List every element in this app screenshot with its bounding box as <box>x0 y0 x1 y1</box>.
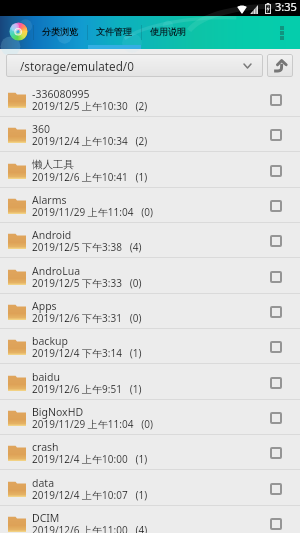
button[interactable]: DCIM <box>0 506 300 533</box>
button[interactable]: -336080995 <box>0 82 300 117</box>
staticText: 2019/12/6 上午10:41 (1) <box>32 170 148 184</box>
button[interactable]: data <box>0 471 300 506</box>
button[interactable]: Android <box>0 223 300 258</box>
button[interactable]: 使用说明 <box>141 16 195 49</box>
button[interactable]: Select crash <box>270 447 282 459</box>
staticText: 2019/12/6 下午3:31 (0) <box>32 311 142 325</box>
button[interactable]: Apps <box>0 294 300 329</box>
button[interactable]: Select 懒人工具 <box>270 165 282 177</box>
button[interactable]: Select Alarms <box>270 200 282 212</box>
staticText: 2019/12/5 上午10:30 (2) <box>32 99 148 113</box>
button[interactable]: BigNoxHD <box>0 400 300 435</box>
staticText: 使用说明 <box>150 26 186 37</box>
staticText: /storage/emulated/0 <box>20 58 134 74</box>
staticText: data <box>32 476 55 490</box>
staticText: Apps <box>32 299 57 313</box>
staticText: 懒人工具 <box>32 158 74 171</box>
button[interactable]: /storage/emulated/0 <box>6 54 263 77</box>
staticText: 2019/12/4 上午10:00 (1) <box>32 452 148 466</box>
staticText: 文件管理 <box>96 26 132 37</box>
button[interactable]: baidu <box>0 365 300 400</box>
button[interactable]: AndroLua <box>0 259 300 294</box>
button[interactable]: Select data <box>270 483 282 495</box>
staticText: 2019/12/4 上午10:34 (2) <box>32 134 148 148</box>
staticText: BigNoxHD <box>32 405 84 419</box>
button[interactable]: 懒人工具 <box>0 153 300 188</box>
staticText: DCIM <box>32 511 60 525</box>
staticText: Android <box>32 228 72 242</box>
staticText: -336080995 <box>32 87 90 101</box>
button[interactable]: Select Android <box>270 235 282 247</box>
staticText: AndroLua <box>32 264 81 278</box>
staticText: crash <box>32 440 59 454</box>
button[interactable]: Select backup <box>270 341 282 353</box>
staticText: 2019/12/5 下午3:38 (4) <box>32 240 142 254</box>
staticText: baidu <box>32 370 61 384</box>
button[interactable]: Select BigNoxHD <box>270 412 282 424</box>
button[interactable]: Alarms <box>0 188 300 223</box>
staticText: 360 <box>32 122 51 136</box>
staticText: Alarms <box>32 193 67 207</box>
button[interactable]: More options <box>272 16 291 49</box>
staticText: 2019/12/6 上午11:00 (4) <box>32 523 148 533</box>
button[interactable]: 文件管理 <box>87 16 141 49</box>
button[interactable]: Select Apps <box>270 306 282 318</box>
button[interactable]: Select AndroLua <box>270 271 282 283</box>
staticText: 2019/12/4 下午3:14 (1) <box>32 346 142 360</box>
staticText: 2019/12/5 下午3:33 (0) <box>32 276 142 290</box>
button[interactable]: backup <box>0 329 300 364</box>
button[interactable]: 360 <box>0 117 300 152</box>
staticText: 2019/11/29 上午11:04 (0) <box>32 205 153 219</box>
staticText: 分类浏览 <box>42 26 78 37</box>
staticText: 2019/11/29 上午11:04 (0) <box>32 417 153 431</box>
staticText: 2019/12/6 上午9:51 (1) <box>32 382 142 396</box>
button[interactable]: Select -336080995 <box>270 94 282 106</box>
button[interactable]: Select baidu <box>270 377 282 389</box>
staticText: backup <box>32 334 68 348</box>
button[interactable]: 分类浏览 <box>33 16 87 49</box>
staticText: 2019/12/4 上午10:07 (1) <box>32 488 148 502</box>
button[interactable]: Select 360 <box>270 129 282 141</box>
button[interactable]: Up one level <box>267 54 293 77</box>
staticText: 3:35 <box>275 0 297 14</box>
button[interactable]: crash <box>0 435 300 470</box>
button[interactable]: Select DCIM <box>270 518 282 530</box>
